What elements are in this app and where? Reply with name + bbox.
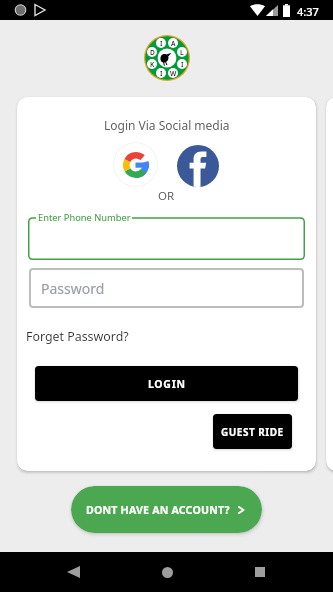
staticText: Forget Password? xyxy=(26,328,129,345)
staticText: I xyxy=(181,60,184,69)
button[interactable]: Password xyxy=(29,268,304,308)
staticText: GUEST RIDE xyxy=(221,425,284,439)
staticText: A xyxy=(171,39,176,48)
staticText: L xyxy=(180,48,184,57)
staticText: D xyxy=(150,48,155,57)
button[interactable]: Home xyxy=(147,552,187,592)
staticText: I xyxy=(160,69,163,78)
staticText: Login Via Social media xyxy=(104,117,230,133)
button[interactable]: Sign in with Facebook xyxy=(177,145,219,187)
staticText: K xyxy=(150,60,155,69)
staticText: OR xyxy=(158,188,175,204)
staticText: W xyxy=(170,69,177,78)
button[interactable]: LOGIN xyxy=(35,366,298,401)
button[interactable]: Back xyxy=(53,552,93,592)
staticText: Enter Phone Number xyxy=(38,211,131,224)
button[interactable]: Forget Password? xyxy=(26,328,129,345)
button[interactable]: DONT HAVE AN ACCOUNT? xyxy=(71,486,262,533)
staticText: 4:37 xyxy=(297,4,319,19)
staticText: I xyxy=(160,39,163,48)
button[interactable]: Sign in with Google xyxy=(113,142,158,187)
button[interactable]: GUEST RIDE xyxy=(213,414,292,449)
staticText: DONT HAVE AN ACCOUNT? xyxy=(86,503,230,517)
staticText: LOGIN xyxy=(148,377,186,391)
staticText: Password xyxy=(41,279,105,298)
button[interactable]: Recent apps xyxy=(240,552,280,592)
